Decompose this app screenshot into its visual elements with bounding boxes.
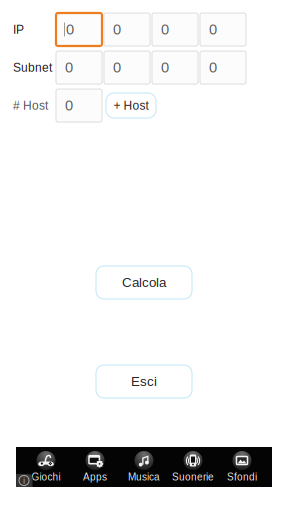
button[interactable]: Calcola xyxy=(96,266,192,299)
staticText: Esci xyxy=(131,374,157,389)
staticText: + Host xyxy=(113,99,148,112)
button[interactable]: Octet xyxy=(104,51,150,84)
staticText: 0 xyxy=(113,21,121,38)
button[interactable]: Musica xyxy=(119,447,168,487)
button[interactable]: Apps xyxy=(70,447,119,487)
staticText: Calcola xyxy=(122,275,166,290)
staticText: 0 xyxy=(209,59,217,76)
button[interactable]: Esci xyxy=(96,365,192,398)
button[interactable]: Suonerie xyxy=(168,447,217,487)
button[interactable]: Sfondi xyxy=(217,447,266,487)
staticText: Subnet xyxy=(13,61,52,74)
staticText: Giochi xyxy=(31,471,60,483)
staticText: 0 xyxy=(113,59,121,76)
button[interactable]: Octet xyxy=(152,51,198,84)
button[interactable]: Octet xyxy=(104,13,150,46)
button[interactable]: Info xyxy=(16,474,32,487)
staticText: IP xyxy=(13,23,24,36)
button[interactable]: Octet xyxy=(152,13,198,46)
staticText: 0 xyxy=(65,59,73,76)
button[interactable]: Giochi xyxy=(21,447,70,487)
staticText: Musica xyxy=(128,471,160,483)
button[interactable]: Octet xyxy=(56,89,102,122)
button[interactable]: Octet xyxy=(56,13,102,46)
button[interactable]: Octet xyxy=(56,51,102,84)
button[interactable]: Octet xyxy=(200,13,246,46)
staticText: 0 xyxy=(65,97,73,114)
button[interactable]: + Host xyxy=(106,93,156,118)
staticText: 0 xyxy=(66,21,74,38)
staticText: 0 xyxy=(209,21,217,38)
staticText: Suonerie xyxy=(172,471,214,483)
staticText: Sfondi xyxy=(227,471,257,483)
staticText: 0 xyxy=(161,21,169,38)
button[interactable]: Octet xyxy=(200,51,246,84)
staticText: Apps xyxy=(83,471,107,483)
staticText: 0 xyxy=(161,59,169,76)
staticText: i xyxy=(23,475,25,486)
staticText: # Host xyxy=(13,99,48,112)
